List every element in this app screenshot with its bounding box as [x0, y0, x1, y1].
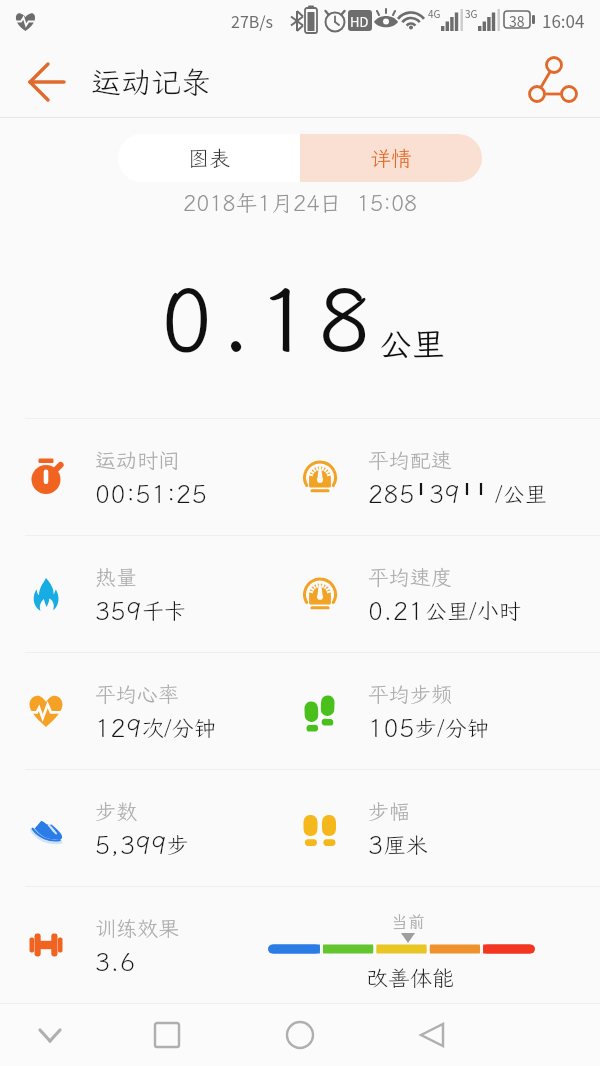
staticText: 285	[368, 477, 415, 510]
staticText: /公里	[495, 479, 547, 508]
staticText: 训练效果	[95, 914, 179, 942]
staticText: 当前	[391, 910, 425, 932]
staticText: 图表	[188, 144, 230, 172]
button[interactable]: Hide navigation	[0, 1004, 100, 1066]
staticText: 39	[429, 477, 461, 510]
staticText: 运动记录	[91, 62, 211, 102]
staticText: 3.6	[95, 945, 136, 978]
staticText: 千卡	[142, 596, 187, 625]
staticText: 0.18	[160, 259, 379, 376]
staticText: 359	[95, 594, 142, 627]
button[interactable]: Recent apps	[117, 1004, 217, 1066]
staticText: 平均心率	[95, 680, 179, 708]
staticText: 3G	[465, 6, 478, 20]
staticText: 平均配速	[368, 446, 452, 474]
button[interactable]: 热量	[0, 536, 274, 652]
staticText: 厘米	[384, 830, 429, 859]
staticText: 运动时间	[95, 446, 179, 474]
staticText: 平均步频	[368, 680, 452, 708]
button[interactable]: 平均步频	[274, 653, 548, 769]
staticText: 3	[368, 828, 384, 861]
button[interactable]: 训练效果	[0, 887, 274, 1003]
staticText: 16:04	[542, 8, 585, 33]
button[interactable]: 步数	[0, 770, 274, 886]
staticText: 改善体能	[366, 963, 455, 992]
staticText: 详情	[370, 144, 412, 172]
staticText: 步	[167, 830, 190, 859]
staticText: 热量	[95, 563, 137, 591]
button[interactable]: 平均心率	[0, 653, 274, 769]
staticText: 步/分钟	[415, 713, 489, 742]
staticText: 00:51:25	[95, 477, 208, 510]
staticText: 公里/小时	[425, 596, 521, 625]
button[interactable]: 详情	[300, 134, 482, 182]
staticText: HD	[350, 12, 369, 31]
staticText: 步数	[95, 797, 137, 825]
button[interactable]: Back	[18, 52, 76, 110]
staticText: 2018年1月24日 15:08	[183, 188, 418, 217]
button[interactable]: Share	[524, 52, 582, 110]
button[interactable]: Back	[383, 1004, 483, 1066]
staticText: 公里	[379, 322, 445, 365]
staticText: 38	[509, 11, 525, 31]
staticText: 0.21	[368, 594, 425, 627]
button[interactable]: Home	[250, 1004, 350, 1066]
staticText: 105	[368, 711, 415, 744]
staticText: 平均速度	[368, 563, 452, 591]
staticText: 步幅	[368, 797, 410, 825]
staticText: 27B/s	[231, 9, 274, 32]
button[interactable]: 平均速度	[274, 536, 548, 652]
button[interactable]: 平均配速	[274, 419, 600, 535]
staticText: 129	[95, 711, 142, 744]
staticText: 次/分钟	[142, 713, 216, 742]
staticText: 4G	[428, 6, 441, 20]
staticText: 5,399	[95, 828, 167, 861]
button[interactable]: 运动时间	[0, 419, 274, 535]
button[interactable]: 图表	[118, 134, 300, 182]
button[interactable]: 步幅	[274, 770, 548, 886]
